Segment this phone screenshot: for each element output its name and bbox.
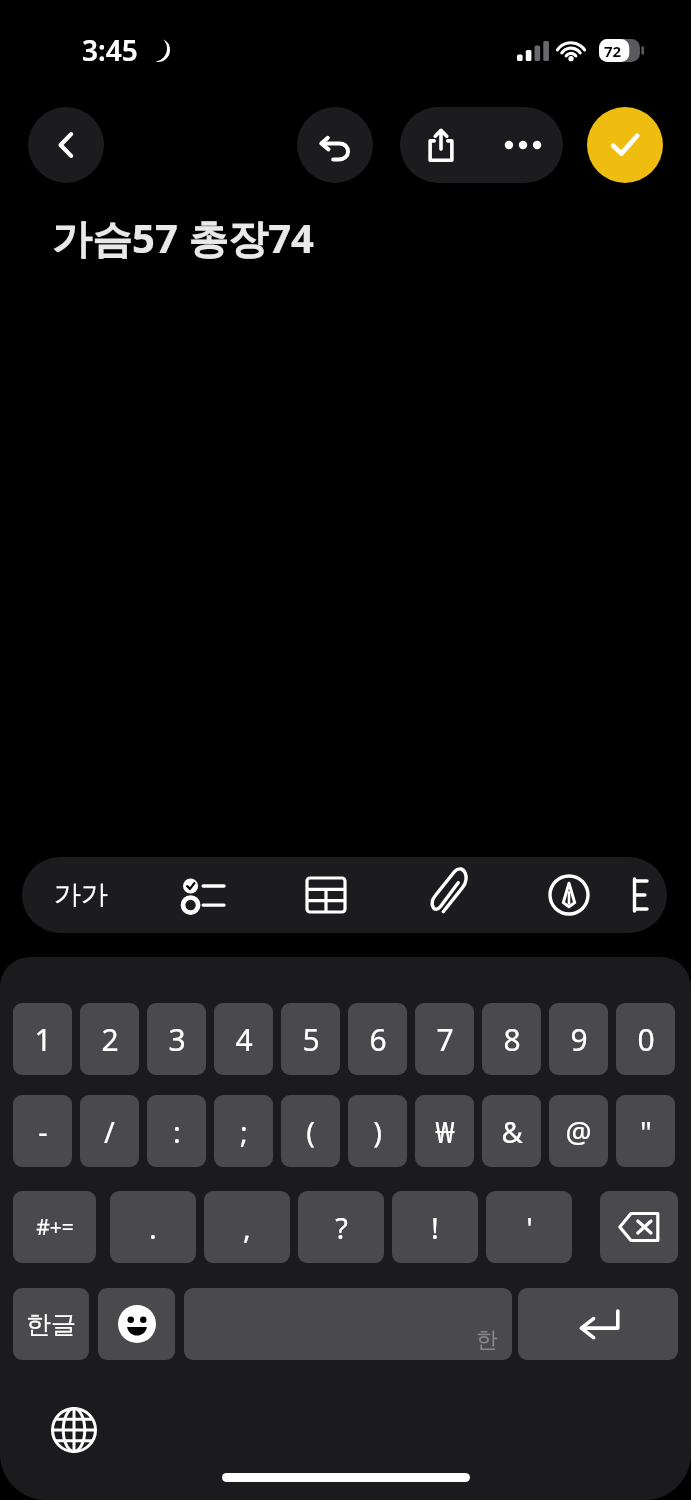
button[interactable]: Attach file: [387, 857, 509, 933]
button[interactable]: Checklist: [140, 857, 265, 933]
staticText: 3: [168, 1019, 186, 1060]
staticText: 한글: [26, 1309, 76, 1340]
staticText: 2: [101, 1019, 119, 1060]
button[interactable]: 3: [147, 1003, 206, 1075]
staticText: 4: [235, 1019, 253, 1060]
button[interactable]: Markup: [509, 857, 629, 933]
staticText: &: [501, 1112, 523, 1151]
staticText: ': [526, 1208, 533, 1247]
button[interactable]: 7: [415, 1003, 474, 1075]
button[interactable]: ;: [214, 1095, 273, 1167]
button[interactable]: ): [348, 1095, 407, 1167]
button[interactable]: 2: [80, 1003, 139, 1075]
button[interactable]: 6: [348, 1003, 407, 1075]
button[interactable]: .: [110, 1191, 196, 1263]
button[interactable]: &: [482, 1095, 541, 1167]
button[interactable]: ": [616, 1095, 675, 1167]
button[interactable]: Share: [400, 107, 482, 183]
staticText: :: [173, 1112, 181, 1151]
button[interactable]: ?: [298, 1191, 384, 1263]
staticText: 한: [476, 1326, 498, 1354]
button[interactable]: Return: [518, 1288, 678, 1360]
button[interactable]: Backspace: [600, 1191, 678, 1263]
button[interactable]: More: [629, 857, 667, 933]
staticText: ": [640, 1112, 652, 1151]
button[interactable]: 5: [281, 1003, 340, 1075]
staticText: 가가: [54, 878, 108, 912]
staticText: 가슴57 총장74: [52, 210, 314, 265]
staticText: 6: [369, 1019, 387, 1060]
button[interactable]: Table: [265, 857, 387, 933]
staticText: 72: [604, 41, 622, 61]
staticText: 8: [503, 1019, 521, 1060]
staticText: -: [38, 1112, 48, 1151]
button[interactable]: Done: [587, 107, 663, 183]
staticText: /: [104, 1112, 115, 1151]
staticText: #+=: [36, 1213, 74, 1242]
staticText: 9: [570, 1019, 588, 1060]
staticText: 0: [637, 1019, 655, 1060]
button[interactable]: ,: [204, 1191, 290, 1263]
button[interactable]: 9: [549, 1003, 608, 1075]
button[interactable]: /: [80, 1095, 139, 1167]
staticText: (: [306, 1112, 315, 1151]
staticText: !: [431, 1208, 439, 1247]
staticText: 3:45: [82, 31, 138, 69]
button[interactable]: (: [281, 1095, 340, 1167]
staticText: 5: [302, 1019, 320, 1060]
button[interactable]: ': [486, 1191, 572, 1263]
staticText: .: [149, 1208, 157, 1247]
button[interactable]: !: [392, 1191, 478, 1263]
button[interactable]: 1: [13, 1003, 72, 1075]
staticText: ?: [335, 1208, 348, 1247]
staticText: ;: [240, 1112, 248, 1151]
staticText: 1: [34, 1019, 52, 1060]
staticText: @: [565, 1112, 592, 1151]
button[interactable]: 한글: [13, 1288, 89, 1360]
button[interactable]: 가가: [22, 857, 140, 933]
staticText: ₩: [435, 1112, 455, 1151]
button[interactable]: Change keyboard: [44, 1400, 104, 1460]
staticText: 7: [436, 1019, 454, 1060]
button[interactable]: Back: [28, 107, 104, 183]
button[interactable]: 4: [214, 1003, 273, 1075]
button[interactable]: #+=: [13, 1191, 96, 1263]
button[interactable]: 0: [616, 1003, 675, 1075]
staticText: ,: [243, 1208, 251, 1247]
staticText: ): [373, 1112, 382, 1151]
button[interactable]: @: [549, 1095, 608, 1167]
button[interactable]: -: [13, 1095, 72, 1167]
button[interactable]: Undo: [297, 107, 373, 183]
button[interactable]: Emoji: [98, 1288, 175, 1360]
button[interactable]: More options: [482, 107, 563, 183]
button[interactable]: 8: [482, 1003, 541, 1075]
button[interactable]: Space: [184, 1288, 512, 1360]
button[interactable]: ₩: [415, 1095, 474, 1167]
button[interactable]: :: [147, 1095, 206, 1167]
